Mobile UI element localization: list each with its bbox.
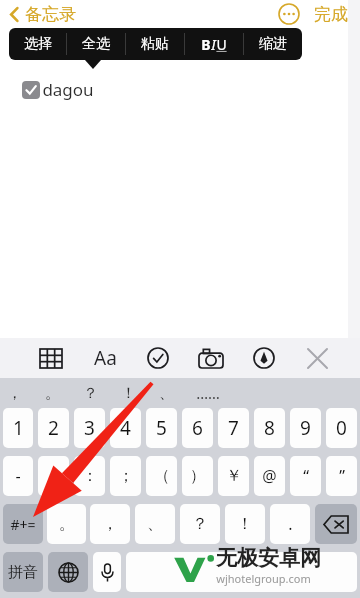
button[interactable]: “ [290,456,321,496]
button[interactable]: ） [182,456,213,496]
staticText: ？ [192,514,208,534]
staticText: ， [102,514,118,534]
button[interactable]: Aa [88,341,122,375]
staticText: 缩进 [259,35,287,53]
button[interactable]: 完成 [312,4,350,25]
button[interactable]: 8 [254,408,285,448]
button[interactable]: 5 [146,408,177,448]
button[interactable] [126,552,357,592]
button[interactable]: Insert table [34,341,68,375]
staticText: 拼音 [8,563,38,582]
staticText: ： [82,466,98,486]
button[interactable]: 粘贴 [126,28,184,60]
staticText: #+= [10,515,36,534]
button[interactable]: - [3,456,33,496]
button[interactable]: 7 [218,408,249,448]
staticText: U [216,35,227,54]
button[interactable]: ￥ [218,456,249,496]
staticText: 1 [13,415,24,441]
button[interactable]: 。 [35,378,69,408]
staticText: 。 [45,384,60,403]
button[interactable]: …… [191,378,225,408]
button[interactable]: @ [254,456,285,496]
button[interactable]: 3 [74,408,105,448]
staticText: ！ [237,514,253,534]
staticText: ； [118,466,134,486]
staticText: 9 [300,415,311,441]
staticText: 全选 [82,35,110,53]
staticText: ” [339,465,345,487]
staticText: 、 [159,384,174,403]
staticText: I [211,35,216,54]
staticText: 0 [336,415,347,441]
staticText: 7 [228,415,239,441]
staticText: 5 [156,415,167,441]
staticText: 4 [120,415,131,441]
button[interactable]: 。 [47,504,86,544]
button[interactable]: Camera [194,341,228,375]
button[interactable]: / [38,456,69,496]
button[interactable]: 备忘录 [6,4,78,25]
button[interactable]: ， [90,504,130,544]
button[interactable]: 6 [182,408,213,448]
button[interactable]: （ [146,456,177,496]
staticText: 完成 [314,4,348,25]
button[interactable]: Checklist [141,341,175,375]
button[interactable]: 选择 [9,28,66,60]
staticText: 选择 [24,35,52,53]
button[interactable]: ” [326,456,357,496]
staticText: ！ [121,384,136,403]
button[interactable]: More options [278,3,300,25]
button[interactable]: ： [74,456,105,496]
button[interactable]: 1 [3,408,33,448]
staticText: ￥ [226,466,242,486]
staticText: （ [154,466,170,486]
button[interactable]: 0 [326,408,357,448]
staticText: dagou [42,78,94,101]
staticText: 2 [48,415,59,441]
staticText: Aa [94,345,117,371]
staticText: . [288,513,293,535]
button[interactable]: 4 [110,408,141,448]
button[interactable]: Delete [315,504,357,544]
staticText: 、 [147,514,163,534]
staticText: ） [190,466,206,486]
staticText: @ [262,465,277,487]
staticText: B [201,35,211,54]
staticText: 8 [264,415,275,441]
button[interactable]: 拼音 [3,552,43,592]
button[interactable]: ？ [73,378,107,408]
button[interactable]: Dictation [93,552,121,592]
button[interactable]: B [185,28,243,60]
button[interactable]: ！ [225,504,265,544]
staticText: wjhotelgroup.com [216,571,311,586]
button[interactable]: Checklist item checked [22,81,40,99]
staticText: ？ [83,384,98,403]
staticText: - [15,465,21,487]
staticText: 3 [84,415,95,441]
button[interactable]: Close keyboard [300,341,334,375]
staticText: 备忘录 [25,4,76,25]
button[interactable]: . [270,504,310,544]
staticText: “ [303,465,309,487]
button[interactable]: Switch keyboard [48,552,88,592]
button[interactable]: ； [110,456,141,496]
staticText: / [51,465,57,487]
button[interactable]: 缩进 [244,28,302,60]
button[interactable]: 、 [135,504,175,544]
staticText: 无极安卓网 [216,545,321,571]
button[interactable]: ？ [180,504,220,544]
button[interactable]: 全选 [67,28,125,60]
staticText: 6 [192,415,203,441]
staticText: ， [7,384,22,403]
button[interactable]: 9 [290,408,321,448]
button[interactable]: #+= [3,504,43,544]
button[interactable]: ， [0,378,31,408]
staticText: 粘贴 [141,35,169,53]
button[interactable]: 、 [149,378,183,408]
staticText: 。 [59,514,75,534]
button[interactable]: ！ [111,378,145,408]
staticText: …… [196,383,220,403]
button[interactable]: Markup [247,341,281,375]
button[interactable]: 2 [38,408,69,448]
